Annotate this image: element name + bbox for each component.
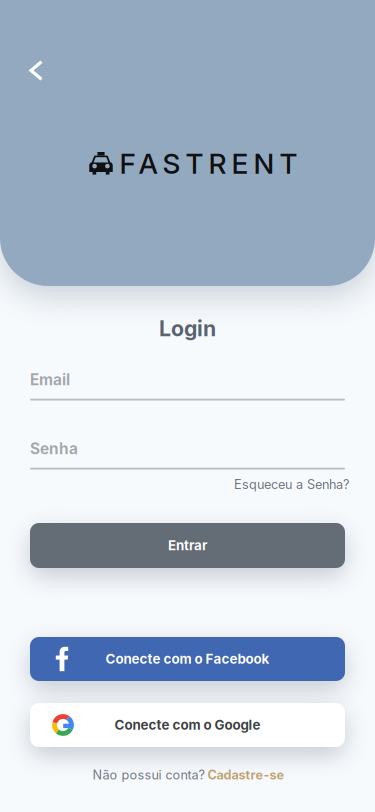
staticText: Conecte com o Google — [114, 717, 260, 733]
button[interactable]: Back — [14, 48, 58, 92]
staticText: FASTRENT — [119, 147, 297, 180]
button[interactable]: Esqueceu a Senha? — [234, 477, 349, 492]
button[interactable]: Conecte com o Facebook — [30, 637, 345, 681]
staticText: Email — [30, 370, 70, 389]
button[interactable]: Conecte com o Google — [30, 703, 345, 747]
staticText: Login — [159, 316, 216, 341]
staticText: Esqueceu a Senha? — [234, 477, 349, 492]
button[interactable]: Não possui conta? — [92, 767, 284, 783]
staticText: Conecte com o Facebook — [105, 651, 269, 667]
staticText: Entrar — [168, 537, 207, 553]
button[interactable]: Entrar — [30, 523, 345, 568]
staticText: Senha — [30, 439, 78, 458]
staticText: Cadastre-se — [207, 767, 284, 783]
staticText: Não possui conta? — [92, 767, 204, 783]
